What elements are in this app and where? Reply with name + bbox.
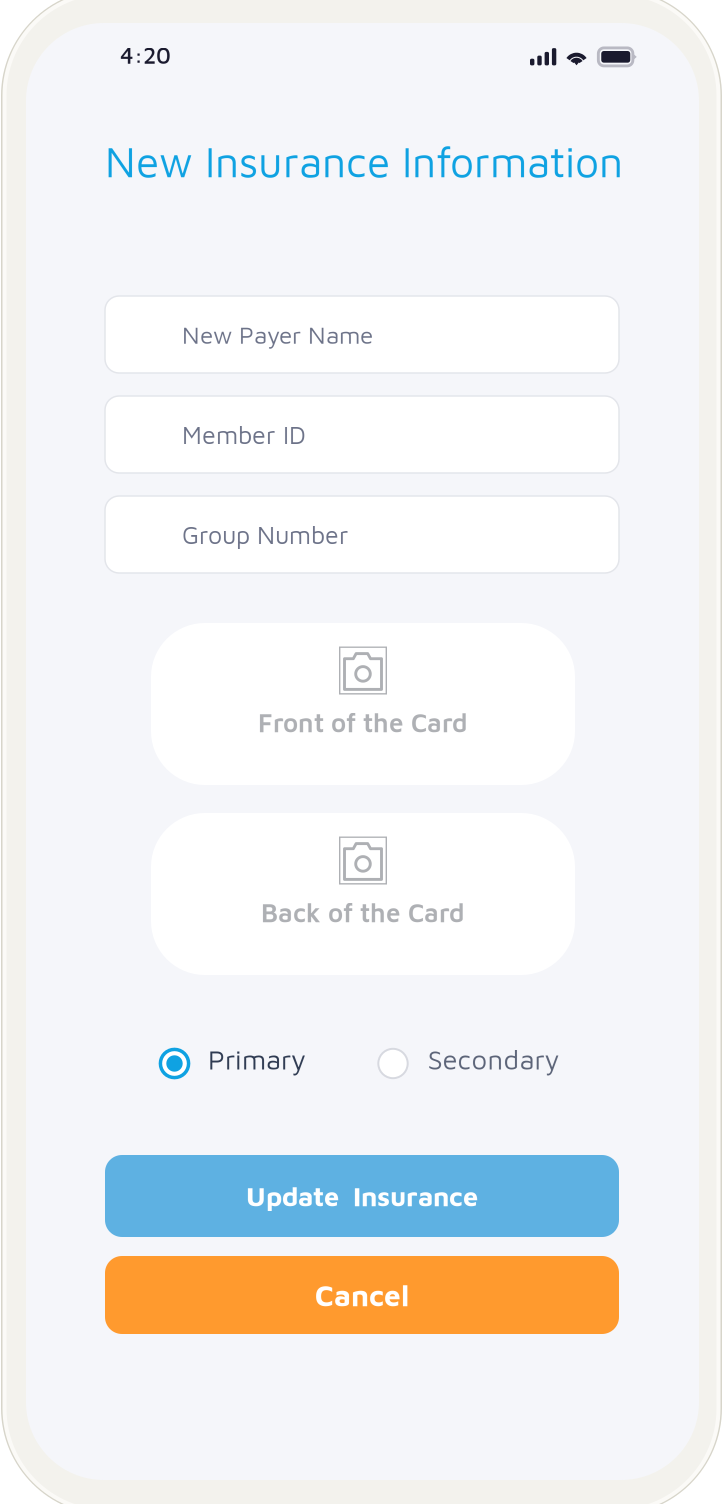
- staticText: 4:20: [120, 42, 171, 68]
- button[interactable]: Group Number: [105, 496, 619, 573]
- button[interactable]: Primary: [158, 1046, 286, 1080]
- staticText: Primary: [208, 1043, 306, 1075]
- staticText: Front of the Card: [258, 707, 468, 738]
- button[interactable]: Front of the Card: [151, 623, 575, 785]
- button[interactable]: Member ID: [105, 396, 619, 473]
- button[interactable]: Secondary: [377, 1046, 549, 1080]
- staticText: Back of the Card: [261, 897, 465, 928]
- button[interactable]: Cancel: [105, 1256, 619, 1334]
- staticText: Group Number: [182, 520, 348, 549]
- staticText: Member ID: [182, 420, 306, 449]
- staticText: New Insurance Information: [105, 136, 623, 186]
- staticText: Cancel: [315, 1277, 409, 1312]
- button[interactable]: Back of the Card: [151, 813, 575, 975]
- staticText: New Payer Name: [182, 320, 373, 349]
- button[interactable]: New Payer Name: [105, 296, 619, 373]
- button[interactable]: Update Insurance: [105, 1155, 619, 1237]
- staticText: Update Insurance: [246, 1180, 478, 1212]
- staticText: Secondary: [427, 1043, 559, 1075]
